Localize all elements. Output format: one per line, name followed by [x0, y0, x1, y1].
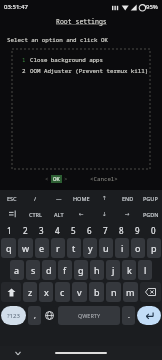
button[interactable]: 6: [81, 225, 97, 236]
staticText: x: [44, 286, 49, 298]
button[interactable]: c: [55, 282, 70, 302]
button[interactable]: o: [131, 238, 145, 258]
button[interactable]: r: [51, 238, 65, 258]
button[interactable]: l: [138, 260, 152, 280]
button[interactable]: ↓: [93, 206, 116, 222]
button[interactable]: <: [45, 175, 68, 183]
button[interactable]: /: [24, 190, 47, 206]
staticText: HOME: [73, 195, 90, 202]
button[interactable]: .: [122, 306, 135, 325]
button[interactable]: n: [106, 282, 121, 302]
staticText: h: [94, 264, 100, 276]
staticText: →: [125, 211, 130, 217]
staticText: END: [122, 195, 134, 202]
button[interactable]: Close background apps: [30, 56, 104, 64]
staticText: Root settings: [56, 17, 107, 26]
button[interactable]: w: [18, 238, 33, 258]
button[interactable]: HOME: [70, 190, 93, 206]
button[interactable]: 4: [49, 225, 65, 236]
staticText: 9: [135, 225, 140, 236]
staticText: >: [64, 175, 68, 183]
button[interactable]: Enter: [137, 306, 161, 325]
button[interactable]: q: [1, 238, 16, 258]
button[interactable]: →: [116, 206, 139, 222]
staticText: n: [111, 286, 117, 298]
button[interactable]: e: [35, 238, 49, 258]
button[interactable]: t: [67, 238, 81, 258]
button[interactable]: Hide keyboard: [14, 349, 22, 357]
button[interactable]: i: [115, 238, 129, 258]
button[interactable]: <Cancel>: [90, 175, 118, 183]
button[interactable]: 3: [33, 225, 49, 236]
staticText: j: [112, 264, 115, 276]
button[interactable]: p: [147, 238, 161, 258]
button[interactable]: ESC: [0, 190, 24, 206]
button[interactable]: Backspace: [140, 282, 161, 302]
button[interactable]: ?123: [1, 306, 26, 325]
button[interactable]: s: [26, 260, 40, 280]
staticText: f: [63, 264, 67, 276]
button[interactable]: OOM Adjuster (Prevent termux kill): [30, 67, 149, 75]
button[interactable]: Tab: [0, 206, 24, 222]
button[interactable]: h: [90, 260, 104, 280]
staticText: v: [77, 286, 82, 298]
button[interactable]: d: [42, 260, 56, 280]
staticText: w: [22, 242, 30, 254]
staticText: <Cancel>: [90, 175, 118, 183]
button[interactable]: ,: [28, 306, 41, 325]
button[interactable]: v: [72, 282, 87, 302]
button[interactable]: 9: [129, 225, 145, 236]
staticText: c: [60, 286, 65, 298]
button[interactable]: x: [39, 282, 53, 302]
staticText: 8: [119, 225, 124, 236]
staticText: QWERTY: [78, 312, 101, 319]
button[interactable]: j: [106, 260, 120, 280]
button[interactable]: —: [47, 190, 70, 206]
button[interactable]: Shift: [1, 282, 21, 302]
staticText: 6: [87, 225, 92, 236]
button[interactable]: y: [83, 238, 97, 258]
button[interactable]: PGDN: [139, 206, 162, 222]
staticText: y: [88, 242, 93, 254]
button[interactable]: f: [58, 260, 72, 280]
staticText: 95%: [146, 3, 158, 11]
staticText: e: [39, 242, 45, 254]
button[interactable]: b: [89, 282, 104, 302]
button[interactable]: k: [122, 260, 136, 280]
staticText: q: [6, 242, 12, 254]
button[interactable]: g: [74, 260, 88, 280]
button[interactable]: CTRL: [24, 206, 47, 222]
staticText: 03:51:47: [4, 3, 28, 11]
button[interactable]: 2: [17, 225, 33, 236]
button[interactable]: 1: [1, 225, 17, 236]
button[interactable]: END: [116, 190, 139, 206]
button[interactable]: m: [123, 282, 138, 302]
staticText: 4: [55, 225, 60, 236]
staticText: ←: [79, 211, 84, 217]
button[interactable]: PGUP: [139, 190, 162, 206]
staticText: m: [126, 286, 135, 298]
staticText: 1: [7, 225, 12, 236]
staticText: p: [151, 242, 157, 254]
button[interactable]: u: [99, 238, 113, 258]
button[interactable]: a: [10, 260, 24, 280]
button[interactable]: ALT: [47, 206, 70, 222]
staticText: ALT: [54, 211, 64, 218]
button[interactable]: 7: [97, 225, 113, 236]
button[interactable]: ←: [70, 206, 93, 222]
button[interactable]: ↑: [93, 190, 116, 206]
staticText: r: [56, 242, 60, 254]
button[interactable]: 5: [65, 225, 81, 236]
staticText: /: [34, 195, 37, 202]
staticText: <: [45, 175, 49, 183]
staticText: l: [144, 264, 147, 276]
staticText: i: [121, 242, 124, 254]
button[interactable]: 8: [113, 225, 129, 236]
button[interactable]: 0: [145, 225, 161, 236]
staticText: 3: [39, 225, 44, 236]
staticText: 1: [22, 56, 26, 64]
button[interactable]: z: [23, 282, 37, 302]
button[interactable]: QWERTY: [58, 306, 120, 325]
button[interactable]: Language: [43, 306, 56, 325]
staticText: CTRL: [29, 211, 42, 218]
